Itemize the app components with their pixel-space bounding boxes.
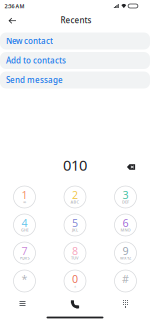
button[interactable]: Back — [0, 11, 25, 31]
staticText: Add to contacts — [6, 55, 66, 66]
staticText: ∞ — [23, 200, 26, 204]
staticText: TUV — [71, 255, 79, 261]
staticText: WXYZ — [120, 255, 131, 261]
button[interactable]: 1 — [9, 184, 39, 210]
button[interactable]: 8 — [60, 240, 90, 266]
button[interactable]: New contact — [0, 32, 150, 49]
button[interactable]: Send message — [0, 71, 150, 88]
staticText: PQRS — [19, 255, 29, 261]
staticText: 010 — [63, 155, 87, 175]
button[interactable]: Calls — [53, 293, 97, 315]
button[interactable]: 3 — [110, 184, 140, 210]
button[interactable]: Add to contacts — [0, 52, 150, 69]
staticText: 1 — [21, 188, 27, 202]
staticText: Recents — [60, 15, 91, 25]
staticText: 5 — [72, 216, 78, 230]
staticText: 7 — [21, 244, 27, 258]
staticText: ABC — [70, 199, 79, 205]
staticText: New contact — [6, 36, 53, 46]
button[interactable]: # — [110, 268, 140, 294]
button[interactable]: 4 — [9, 212, 39, 238]
button[interactable]: 0 — [60, 268, 90, 294]
staticText: JKL — [72, 227, 78, 233]
staticText: 2 — [72, 188, 78, 202]
button[interactable]: 7 — [9, 240, 39, 266]
button[interactable]: 5 — [60, 212, 90, 238]
staticText: MNO — [120, 227, 130, 233]
staticText: GHI — [21, 227, 28, 233]
button[interactable]: Call log — [0, 293, 44, 315]
staticText: 0 — [72, 272, 78, 286]
staticText: + — [74, 283, 76, 289]
staticText: * — [21, 272, 27, 286]
staticText: 9 — [122, 244, 128, 258]
staticText: DEF — [122, 199, 129, 205]
staticText: 8 — [72, 244, 78, 258]
button[interactable]: 9 — [110, 240, 140, 266]
staticText: Send message — [6, 75, 63, 85]
button[interactable]: 2 — [60, 184, 90, 210]
button[interactable]: 6 — [110, 212, 140, 238]
button[interactable]: Delete — [120, 158, 142, 176]
staticText: 3 — [122, 188, 128, 202]
button[interactable]: Keypad — [104, 293, 148, 315]
staticText: 2:36 AM — [4, 3, 24, 10]
staticText: # — [122, 272, 129, 286]
button[interactable]: * — [9, 268, 39, 294]
staticText: 4 — [21, 216, 27, 230]
staticText: 6 — [122, 216, 128, 230]
